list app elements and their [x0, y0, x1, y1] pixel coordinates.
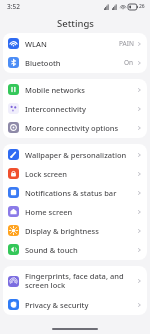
button[interactable]: Privacy & security — [3, 295, 147, 314]
staticText: On — [124, 58, 134, 67]
button[interactable]: Display & brightness — [3, 221, 147, 240]
staticText: 26 — [139, 3, 145, 10]
button[interactable]: Bluetooth — [3, 53, 147, 72]
staticText: 3:52 — [7, 2, 20, 11]
staticText: Bluetooth — [25, 58, 124, 68]
button[interactable]: Notifications & status bar — [3, 183, 147, 202]
button[interactable]: Home screen — [3, 202, 147, 221]
staticText: Sound & touch — [25, 245, 137, 255]
staticText: Wallpaper & personalization — [25, 150, 137, 160]
staticText: WLAN — [25, 39, 119, 49]
staticText: Privacy & security — [25, 300, 137, 310]
button[interactable]: More connectivity options — [3, 118, 147, 137]
button[interactable]: WLAN — [3, 34, 147, 53]
staticText: Notifications & status bar — [25, 188, 137, 198]
staticText: Fingerprints, face data, and screen lock — [25, 271, 137, 291]
staticText: Mobile networks — [25, 85, 137, 95]
staticText: More connectivity options — [25, 123, 137, 133]
button[interactable]: Mobile networks — [3, 80, 147, 99]
staticText: Lock screen — [25, 169, 137, 179]
staticText: Settings — [57, 17, 94, 30]
staticText: PAIN — [119, 39, 134, 48]
button[interactable]: Lock screen — [3, 164, 147, 183]
staticText: Display & brightness — [25, 226, 137, 236]
button[interactable]: Sound & touch — [3, 240, 147, 259]
staticText: Interconnectivity — [25, 104, 137, 114]
button[interactable]: Interconnectivity — [3, 99, 147, 118]
button[interactable]: Wallpaper & personalization — [3, 145, 147, 164]
button[interactable]: Fingerprints, face data, and screen lock — [3, 267, 147, 295]
staticText: Home screen — [25, 207, 137, 217]
